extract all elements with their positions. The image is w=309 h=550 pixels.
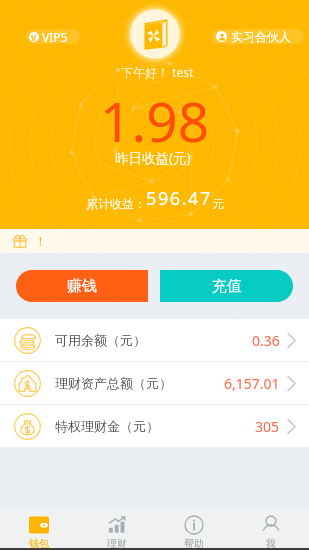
button[interactable]: 理财资产总额（元） (0, 362, 309, 404)
button[interactable]: 实习合伙人 (212, 29, 304, 44)
button[interactable]: 帮助 (155, 508, 232, 548)
staticText: 充值 (212, 277, 242, 296)
staticText: 可用余额（元） (55, 332, 146, 348)
staticText: 理财资产总额（元） (55, 375, 172, 391)
staticText: 实习合伙人 (231, 29, 291, 44)
staticText: 累计收益： (86, 196, 146, 211)
button[interactable]: 钱包 (0, 508, 78, 548)
button[interactable]: 赚钱 (16, 270, 148, 302)
staticText: 305 (255, 417, 280, 436)
staticText: 1.98 (100, 83, 210, 158)
button[interactable]: 可用余额（元） (0, 319, 309, 361)
staticText: 596.47 (146, 186, 212, 211)
staticText: 6,157.01 (224, 374, 280, 393)
staticText: V (31, 32, 37, 42)
staticText: 0.36 (252, 331, 280, 350)
button[interactable]: 理财 (78, 508, 155, 548)
staticText: 特权理财金（元） (55, 418, 159, 434)
staticText: 理财 (107, 537, 127, 548)
button[interactable]: 特权理财金（元） (0, 405, 309, 447)
staticText: 元 (212, 196, 224, 211)
staticText: 下午好！ test (121, 64, 194, 80)
staticText: 昨日收益(元) (115, 149, 191, 167)
other: Gift (13, 234, 27, 248)
button[interactable]: 我 (232, 508, 309, 548)
button[interactable]: Gift (0, 229, 309, 253)
staticText: 钱包 (29, 537, 49, 548)
staticText: VIP5 (42, 29, 68, 44)
staticText: 帮助 (184, 537, 204, 548)
staticText: ！ (34, 233, 47, 249)
button[interactable]: Profile avatar (122, 1, 188, 67)
button[interactable]: V (26, 29, 80, 44)
button[interactable]: 充值 (160, 270, 293, 302)
staticText: 我 (266, 537, 276, 548)
staticText: 赚钱 (67, 277, 97, 296)
